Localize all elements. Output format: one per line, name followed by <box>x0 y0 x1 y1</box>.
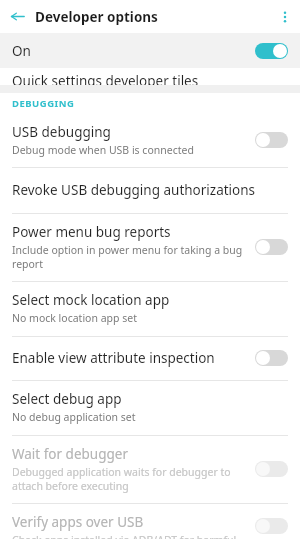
staticText: Developer options <box>35 8 158 26</box>
button[interactable]: Verify apps over USB <box>0 504 300 549</box>
button[interactable]: Back <box>0 0 34 33</box>
button[interactable]: Quick settings developer tiles <box>0 68 300 85</box>
button[interactable]: Select debug app <box>0 381 300 435</box>
staticText: Debugged application waits for debugger … <box>12 465 245 493</box>
staticText: Revoke USB debugging authorizations <box>12 181 256 199</box>
staticText: Enable view attribute inspection <box>12 349 215 367</box>
button[interactable]: On <box>0 33 300 68</box>
staticText: DEBUGGING <box>12 97 75 110</box>
button[interactable]: Power menu bug reports <box>0 214 300 281</box>
staticText: On <box>12 42 31 60</box>
staticText: Include option in power menu for taking … <box>12 243 245 271</box>
staticText: No mock location app set <box>12 311 137 325</box>
staticText: Check apps installed via ADB/ADT for har… <box>12 533 245 539</box>
button[interactable]: Select mock location app <box>0 282 300 336</box>
staticText: Select mock location app <box>12 291 170 309</box>
button[interactable]: Revoke USB debugging authorizations <box>0 168 300 213</box>
button[interactable]: USB debugging <box>0 114 300 167</box>
staticText: Wait for debugger <box>12 445 128 463</box>
staticText: No debug application set <box>12 410 136 424</box>
button[interactable]: Enable view attribute inspection <box>0 337 300 380</box>
staticText: USB debugging <box>12 123 111 141</box>
button[interactable]: More options <box>270 2 300 32</box>
staticText: Verify apps over USB <box>12 513 144 531</box>
staticText: Select debug app <box>12 390 122 408</box>
staticText: Quick settings developer tiles <box>12 72 199 85</box>
staticText: Debug mode when USB is connected <box>12 143 194 157</box>
button[interactable]: Wait for debugger <box>0 436 300 503</box>
staticText: Power menu bug reports <box>12 223 171 241</box>
